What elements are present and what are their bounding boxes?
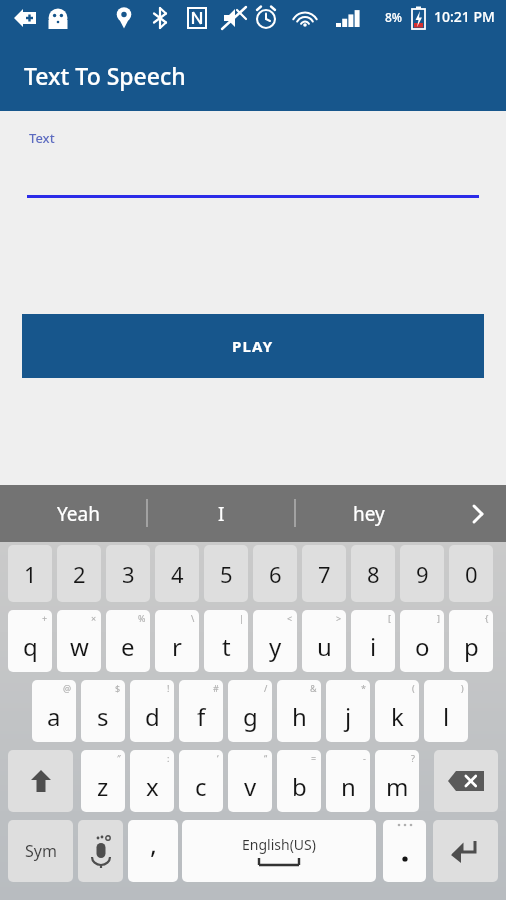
- staticText: 6: [269, 559, 282, 589]
- button[interactable]: [8, 750, 73, 812]
- staticText: I: [218, 501, 225, 527]
- staticText: a: [47, 700, 61, 733]
- staticText: /: [264, 682, 268, 694]
- button[interactable]: ,: [128, 820, 178, 882]
- staticText: {: [485, 612, 489, 624]
- staticText: Text To Speech: [24, 60, 186, 91]
- staticText: 7: [318, 559, 331, 589]
- staticText: y: [269, 630, 282, 663]
- staticText: 8: [367, 559, 380, 589]
- staticText: h: [292, 700, 307, 733]
- staticText: t: [222, 630, 231, 663]
- button[interactable]: $: [81, 680, 125, 742]
- staticText: @: [63, 682, 72, 694]
- button[interactable]: #: [179, 680, 223, 742]
- button[interactable]: 3: [106, 545, 150, 602]
- button[interactable]: <: [253, 610, 297, 672]
- button[interactable]: 9: [400, 545, 444, 602]
- button[interactable]: !: [130, 680, 174, 742]
- button[interactable]: \: [155, 610, 199, 672]
- staticText: ?: [411, 752, 415, 764]
- button[interactable]: ]: [400, 610, 444, 672]
- button[interactable]: [: [351, 610, 395, 672]
- staticText: Yeah: [57, 501, 100, 527]
- staticText: Sym: [25, 840, 57, 862]
- button[interactable]: 0: [449, 545, 493, 602]
- button[interactable]: 5: [204, 545, 248, 602]
- staticText: q: [23, 630, 38, 663]
- button[interactable]: Backspace: [434, 750, 498, 812]
- button[interactable]: +: [8, 610, 52, 672]
- staticText: [: [388, 612, 391, 624]
- button[interactable]: @: [32, 680, 76, 742]
- staticText: >: [336, 612, 342, 624]
- button[interactable]: “: [228, 750, 272, 812]
- button[interactable]: ×: [57, 610, 101, 672]
- staticText: (: [412, 682, 415, 694]
- staticText: ×: [91, 612, 97, 624]
- button[interactable]: 7: [302, 545, 346, 602]
- button[interactable]: Voice input: [78, 820, 123, 882]
- button[interactable]: =: [277, 750, 321, 812]
- button[interactable]: *: [326, 680, 370, 742]
- staticText: hey: [353, 501, 385, 527]
- button[interactable]: 6: [253, 545, 297, 602]
- staticText: f: [197, 700, 206, 733]
- button[interactable]: ″: [81, 750, 125, 812]
- staticText: =: [311, 752, 317, 764]
- staticText: |: [239, 612, 244, 624]
- button[interactable]: {: [449, 610, 493, 672]
- staticText: PLAY: [232, 336, 274, 356]
- staticText: w: [70, 630, 89, 663]
- button[interactable]: %: [106, 610, 150, 672]
- staticText: ‘: [217, 752, 219, 764]
- button[interactable]: PLAY: [22, 314, 484, 378]
- staticText: v: [244, 770, 257, 803]
- button[interactable]: 2: [57, 545, 101, 602]
- staticText: !: [167, 682, 170, 694]
- button[interactable]: ): [424, 680, 468, 742]
- staticText: b: [292, 770, 307, 803]
- staticText: l: [443, 700, 450, 733]
- button[interactable]: &: [277, 680, 321, 742]
- button[interactable]: More suggestions: [450, 485, 506, 542]
- staticText: c: [195, 770, 207, 803]
- button[interactable]: -: [326, 750, 370, 812]
- button[interactable]: Yeah: [10, 485, 147, 542]
- staticText: u: [317, 630, 332, 663]
- button[interactable]: Space: [182, 820, 376, 882]
- staticText: 8%: [385, 9, 403, 25]
- button[interactable]: Period: [383, 820, 426, 882]
- staticText: 1: [24, 559, 37, 589]
- button[interactable]: :: [130, 750, 174, 812]
- staticText: +: [42, 612, 48, 624]
- button[interactable]: >: [302, 610, 346, 672]
- staticText: z: [97, 770, 109, 803]
- button[interactable]: 4: [155, 545, 199, 602]
- staticText: *: [361, 682, 366, 694]
- button[interactable]: Enter: [433, 820, 498, 882]
- button[interactable]: Sym: [8, 820, 73, 882]
- staticText: 3: [122, 559, 135, 589]
- staticText: x: [146, 770, 159, 803]
- staticText: d: [145, 700, 160, 733]
- staticText: $: [115, 682, 121, 694]
- staticText: :: [167, 752, 170, 764]
- staticText: #: [213, 682, 219, 694]
- button[interactable]: 8: [351, 545, 395, 602]
- staticText: %: [138, 612, 146, 624]
- button[interactable]: |: [204, 610, 248, 672]
- button[interactable]: I: [147, 485, 295, 542]
- button[interactable]: (: [375, 680, 419, 742]
- staticText: ): [461, 682, 464, 694]
- button[interactable]: ?: [375, 750, 419, 812]
- staticText: 2: [73, 559, 86, 589]
- button[interactable]: ‘: [179, 750, 223, 812]
- staticText: <: [287, 612, 293, 624]
- staticText: 10:21 PM: [434, 7, 495, 26]
- button[interactable]: hey: [295, 485, 443, 542]
- staticText: \: [191, 612, 195, 624]
- button[interactable]: 1: [8, 545, 52, 602]
- button[interactable]: /: [228, 680, 272, 742]
